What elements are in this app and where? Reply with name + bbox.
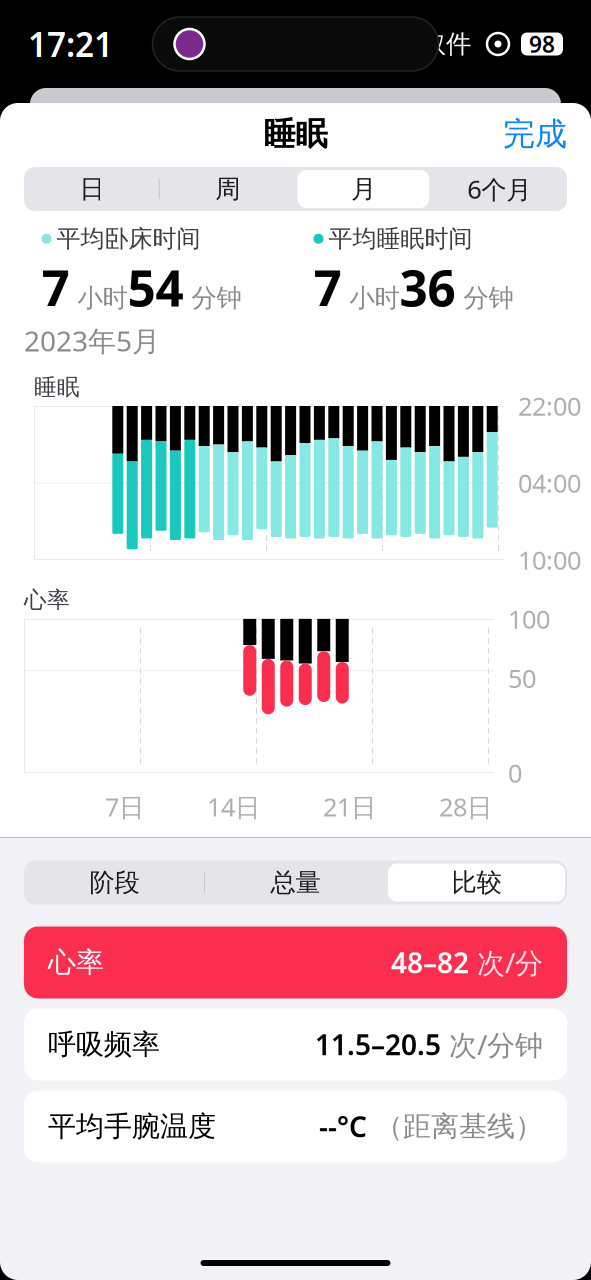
staticText: 小时 <box>341 282 399 313</box>
staticText: 28日 <box>439 790 492 823</box>
button[interactable]: 心率 <box>24 926 567 998</box>
staticText: 10:00 <box>518 543 581 577</box>
staticText: 22:00 <box>518 389 581 423</box>
staticText: 2023年5月 <box>24 322 160 359</box>
staticText: 7日 <box>105 790 144 823</box>
staticText: （距离基线） <box>367 1109 543 1144</box>
button[interactable]: 6个月 <box>431 167 567 211</box>
staticText: 呼吸频率 <box>48 1027 160 1062</box>
staticText: 周 <box>215 173 240 204</box>
staticText: 完成 <box>503 114 567 154</box>
button[interactable]: 总量 <box>205 860 386 904</box>
staticText: 日 <box>79 173 104 204</box>
staticText: 月 <box>351 173 376 204</box>
staticText: 分钟 <box>183 282 241 313</box>
staticText: 50 <box>508 661 536 695</box>
staticText: 0 <box>508 756 522 790</box>
button[interactable]: 日 <box>24 167 160 211</box>
staticText: 比较 <box>451 867 501 898</box>
staticText: 7 <box>313 254 341 320</box>
staticText: 36 <box>399 254 455 320</box>
button[interactable]: 月 <box>295 167 431 211</box>
staticText: 待取件 <box>396 28 471 59</box>
staticText: 11.5–20.5 <box>315 1026 441 1063</box>
staticText: --°C <box>319 1108 367 1145</box>
staticText: 平均睡眠时间 <box>328 224 472 253</box>
staticText: 心率 <box>24 586 70 614</box>
staticText: 6个月 <box>467 172 531 206</box>
staticText: 04:00 <box>518 466 581 500</box>
button[interactable]: 周 <box>160 167 296 211</box>
staticText: 98 <box>529 29 555 59</box>
staticText: 次/分钟 <box>441 1026 543 1063</box>
button[interactable]: 完成 <box>487 106 583 162</box>
staticText: 总量 <box>270 867 320 898</box>
staticText: 阶段 <box>89 867 139 898</box>
staticText: 100 <box>508 602 550 636</box>
staticText: 54 <box>127 254 183 320</box>
staticText: 7 <box>41 254 69 320</box>
staticText: 21日 <box>323 790 376 823</box>
button[interactable]: 呼吸频率 <box>24 1008 567 1080</box>
button[interactable]: 比较 <box>386 860 567 904</box>
staticText: 平均卧床时间 <box>56 224 200 253</box>
staticText: 次/分 <box>469 944 543 981</box>
staticText: 睡眠 <box>263 114 327 154</box>
staticText: 分钟 <box>455 282 513 313</box>
staticText: 48–82 <box>391 944 469 981</box>
staticText: 小时 <box>69 282 127 313</box>
button[interactable]: 平均手腕温度 <box>24 1090 567 1162</box>
staticText: 平均手腕温度 <box>48 1109 216 1144</box>
staticText: 睡眠 <box>34 373 80 401</box>
staticText: 心率 <box>48 945 104 980</box>
button[interactable]: 阶段 <box>24 860 205 904</box>
staticText: 17:21 <box>28 22 113 66</box>
staticText: 14日 <box>207 790 260 823</box>
